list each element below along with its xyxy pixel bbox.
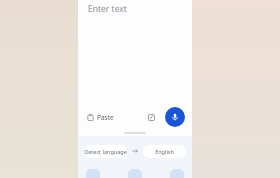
button[interactable]: Enter text [78, 0, 192, 136]
staticText: English [155, 148, 174, 155]
staticText: Detect language [84, 148, 127, 155]
button[interactable]: Detect language [84, 145, 127, 158]
staticText: Enter text [88, 3, 127, 15]
button[interactable]: Paste [85, 111, 116, 124]
button[interactable]: English [143, 145, 186, 158]
button[interactable]: Handwriting input [144, 110, 158, 124]
staticText: Paste [97, 113, 114, 122]
button[interactable]: Voice input [165, 107, 185, 127]
